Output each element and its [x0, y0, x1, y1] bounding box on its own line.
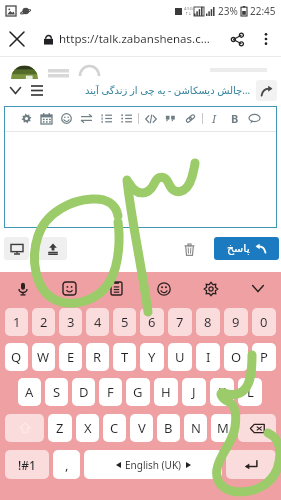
- button[interactable]: Link: [182, 110, 199, 127]
- button[interactable]: L: [238, 378, 262, 406]
- staticText: 4: [94, 313, 102, 331]
- staticText: 22:45: [250, 4, 276, 18]
- staticText: R: [93, 348, 102, 366]
- button[interactable]: H: [154, 378, 178, 406]
- button[interactable]: Voice input: [0, 272, 46, 305]
- button[interactable]: U: [168, 343, 192, 371]
- button[interactable]: 8: [196, 308, 220, 336]
- staticText: 7: [176, 313, 184, 331]
- button[interactable]: 4: [86, 308, 109, 336]
- button[interactable]: ,: [53, 450, 80, 479]
- staticText: S: [53, 383, 61, 401]
- staticText: H: [161, 383, 171, 401]
- button[interactable]: Hide keyboard: [234, 272, 281, 305]
- staticText: 3: [67, 313, 75, 331]
- button[interactable]: Calendar: [38, 110, 55, 127]
- button[interactable]: B: [157, 414, 180, 442]
- button[interactable]: Delete: [178, 238, 200, 260]
- staticText: X: [84, 419, 92, 437]
- button[interactable]: Menu: [26, 79, 48, 101]
- button[interactable]: پاسخ: [214, 237, 279, 260]
- button[interactable]: J: [182, 378, 206, 406]
- button[interactable]: O: [224, 343, 248, 371]
- staticText: C: [110, 419, 119, 437]
- button[interactable]: More options: [253, 26, 279, 52]
- button[interactable]: Share: [221, 23, 253, 55]
- button[interactable]: English (UK): [84, 450, 222, 479]
- button[interactable]: 0: [252, 308, 276, 336]
- button[interactable]: Collapse: [4, 79, 26, 101]
- staticText: A: [25, 383, 34, 401]
- button[interactable]: Clipboard: [93, 272, 140, 305]
- button[interactable]: V: [130, 414, 153, 442]
- button[interactable]: Bold: [226, 110, 243, 127]
- button[interactable]: !#1: [5, 450, 49, 479]
- button[interactable]: Settings: [187, 272, 234, 305]
- button[interactable]: C: [103, 414, 126, 442]
- staticText: https://talk.zabanshenas.c…: [59, 31, 210, 47]
- button[interactable]: Italic: [206, 110, 223, 127]
- button[interactable]: Quote: [162, 110, 179, 127]
- button[interactable]: K: [210, 378, 234, 406]
- staticText: ,: [65, 456, 69, 474]
- button[interactable]: 9: [224, 308, 248, 336]
- button[interactable]: Q: [5, 343, 28, 371]
- button[interactable]: Forward: [256, 80, 277, 101]
- button[interactable]: S: [45, 378, 68, 406]
- button[interactable]: P: [252, 343, 276, 371]
- staticText: پاسخ: [227, 242, 250, 255]
- button[interactable]: 7: [168, 308, 192, 336]
- button[interactable]: Enter: [226, 450, 276, 479]
- button[interactable]: Y: [140, 343, 164, 371]
- button[interactable]: 1: [5, 308, 28, 336]
- staticText: B: [164, 419, 173, 437]
- staticText: I: [212, 111, 217, 126]
- button[interactable]: Comment: [246, 110, 263, 127]
- button[interactable]: Upload: [38, 237, 67, 260]
- button[interactable]: Preview: [4, 237, 29, 260]
- staticText: 9: [232, 313, 240, 331]
- staticText: Y: [148, 348, 156, 366]
- staticText: N: [191, 419, 201, 437]
- button[interactable]: G: [126, 378, 150, 406]
- button[interactable]: Backspace: [238, 414, 276, 442]
- button[interactable]: F: [99, 378, 122, 406]
- staticText: I: [206, 348, 211, 366]
- button[interactable]: M: [211, 414, 234, 442]
- button[interactable]: 2: [32, 308, 55, 336]
- staticText: 1: [13, 313, 21, 331]
- button[interactable]: Bullet list: [118, 110, 135, 127]
- button[interactable]: Z: [48, 414, 72, 442]
- button[interactable]: Stickers: [46, 272, 93, 305]
- staticText: P: [260, 348, 268, 366]
- button[interactable]: E: [59, 343, 82, 371]
- button[interactable]: A: [18, 378, 41, 406]
- button[interactable]: Numbered list: [98, 110, 115, 127]
- button[interactable]: D: [72, 378, 95, 406]
- staticText: E: [67, 348, 75, 366]
- button[interactable]: W: [32, 343, 55, 371]
- button[interactable]: T: [113, 343, 136, 371]
- staticText: 2: [40, 313, 48, 331]
- button[interactable]: Code: [142, 110, 159, 127]
- staticText: 8: [204, 313, 212, 331]
- button[interactable]: 3: [59, 308, 82, 336]
- button[interactable]: Close: [0, 22, 34, 56]
- button[interactable]: Swap: [78, 110, 95, 127]
- button[interactable]: R: [86, 343, 109, 371]
- staticText: M: [217, 419, 229, 437]
- staticText: 5: [121, 313, 129, 331]
- button[interactable]: Shift: [5, 414, 44, 442]
- button[interactable]: Settings: [18, 110, 35, 127]
- button[interactable]: 5: [113, 308, 136, 336]
- button[interactable]: 6: [140, 308, 164, 336]
- button[interactable]: I: [196, 343, 220, 371]
- staticText: D: [79, 383, 89, 401]
- button[interactable]: X: [76, 414, 99, 442]
- staticText: V: [138, 419, 146, 437]
- button[interactable]: Emoji: [140, 272, 187, 305]
- button[interactable]: Emoji: [58, 110, 75, 127]
- staticText: W: [37, 348, 50, 366]
- button[interactable]: N: [184, 414, 207, 442]
- staticText: L: [247, 383, 254, 401]
